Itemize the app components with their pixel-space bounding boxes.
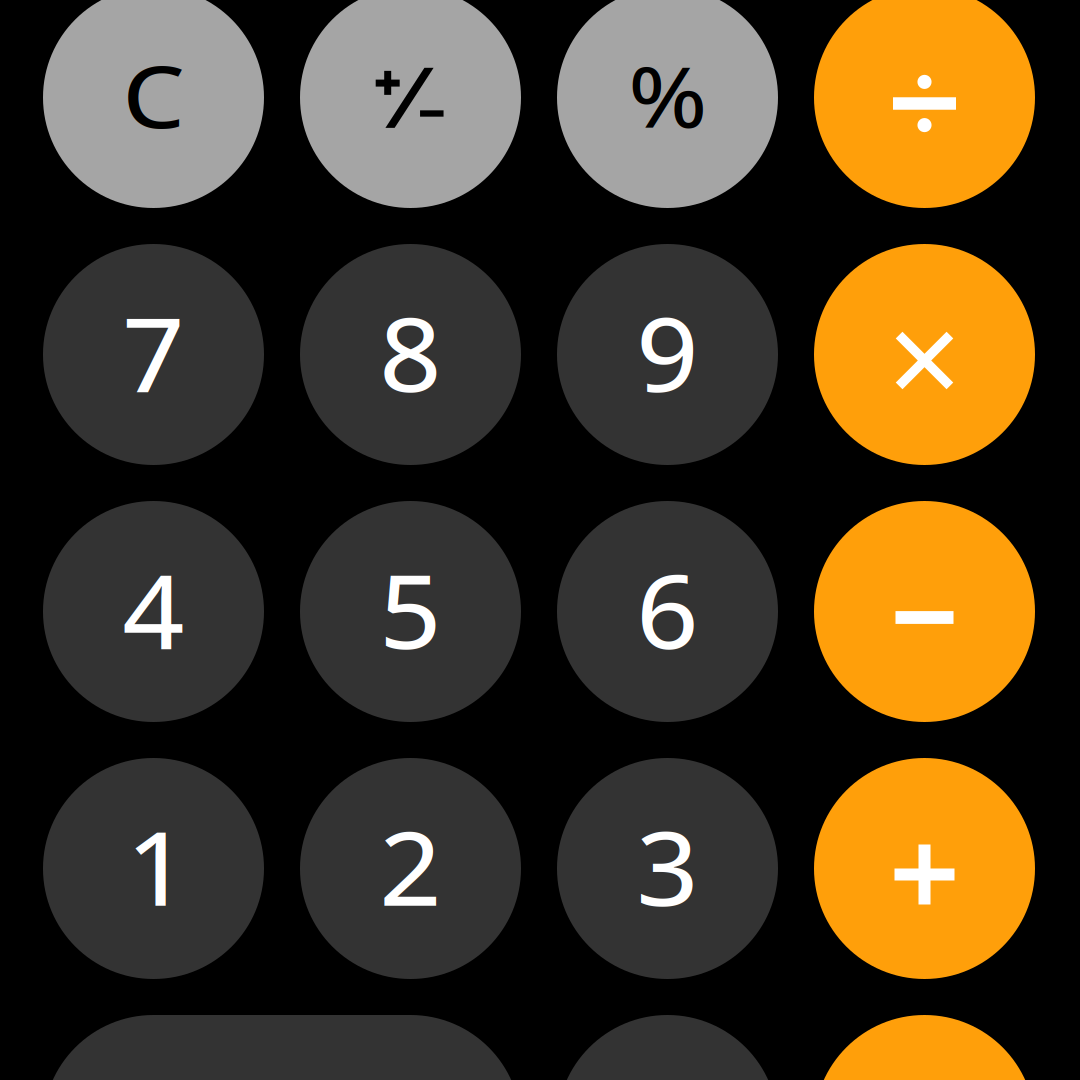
button[interactable]: 4 [43, 501, 264, 722]
staticText: C [126, 37, 180, 153]
staticText: 8 [381, 282, 440, 422]
button[interactable]: Equals [814, 1015, 1035, 1080]
button[interactable]: % [557, 0, 778, 208]
button[interactable]: Plus minus [300, 0, 521, 208]
button[interactable]: Divide [814, 0, 1035, 208]
staticText: % [632, 38, 702, 152]
staticText: 3 [638, 796, 697, 936]
staticText: 6 [638, 539, 697, 679]
button[interactable]: 2 [300, 758, 521, 979]
button[interactable]: C [43, 0, 264, 208]
button[interactable]: . [557, 1015, 778, 1080]
button[interactable]: Plus [814, 758, 1035, 979]
staticText: 4 [124, 539, 183, 679]
button[interactable]: Minus [814, 501, 1035, 722]
button[interactable]: 8 [300, 244, 521, 465]
button[interactable]: 1 [43, 758, 264, 979]
button[interactable]: 0 [43, 1015, 521, 1080]
staticText: 7 [124, 282, 183, 422]
staticText: 1 [128, 796, 187, 936]
button[interactable]: 7 [43, 244, 264, 465]
staticText: 2 [381, 796, 440, 936]
button[interactable]: 9 [557, 244, 778, 465]
staticText: 9 [638, 282, 697, 422]
staticText: 5 [381, 539, 440, 679]
button[interactable]: 3 [557, 758, 778, 979]
button[interactable]: 5 [300, 501, 521, 722]
button[interactable]: Multiply [814, 244, 1035, 465]
button[interactable]: 6 [557, 501, 778, 722]
